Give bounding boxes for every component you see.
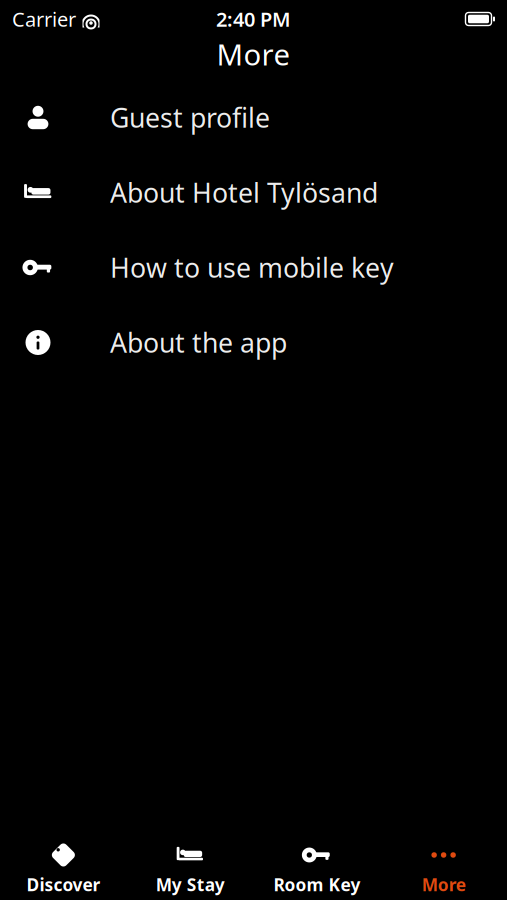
button[interactable]: About Hotel Tylösand [0, 155, 507, 230]
button[interactable]: How to use mobile key [0, 230, 507, 305]
staticText: Guest profile [110, 100, 270, 135]
button[interactable]: Room Key [253, 840, 380, 898]
staticText: Room Key [273, 873, 360, 896]
staticText: My Stay [156, 873, 225, 896]
staticText: Carrier [12, 6, 76, 32]
staticText: How to use mobile key [110, 250, 394, 285]
button[interactable]: My Stay [127, 840, 254, 898]
staticText: About Hotel Tylösand [110, 175, 378, 210]
staticText: 2:40 PM [216, 6, 291, 32]
staticText: Discover [26, 873, 100, 896]
staticText: About the app [110, 325, 287, 360]
button[interactable]: Discover [0, 840, 127, 898]
button[interactable]: Guest profile [0, 80, 507, 155]
button[interactable]: More [380, 840, 507, 898]
staticText: More [422, 873, 466, 896]
button[interactable]: About the app [0, 305, 507, 380]
staticText: More [216, 34, 290, 73]
